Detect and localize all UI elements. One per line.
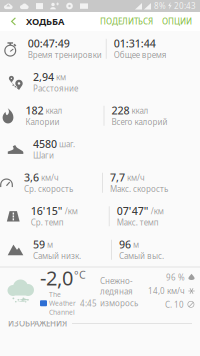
staticText: 16'15" [31, 204, 63, 218]
staticText: Калории [25, 116, 59, 127]
staticText: ОПЦИИ [162, 16, 192, 27]
staticText: 07'47" [117, 204, 149, 218]
staticText: 7,7 [110, 170, 125, 185]
staticText: изморось [100, 298, 138, 308]
staticText: 228 [111, 103, 129, 118]
staticText: 14,0 км/ч [148, 286, 185, 296]
staticText: Расстояние [33, 83, 78, 94]
staticText: Снежно-ледяная [100, 276, 133, 297]
staticText: шаг. [59, 139, 75, 149]
staticText: км/ч [127, 172, 145, 183]
staticText: 8% [154, 1, 166, 11]
staticText: 01:31:44 [114, 36, 156, 51]
staticText: м [47, 239, 53, 250]
staticText: 20:43 [174, 1, 196, 11]
staticText: -2,0 [40, 264, 73, 291]
staticText: °C [74, 267, 86, 282]
button[interactable]: ПОДЕЛИТЬСЯ [100, 12, 153, 31]
button[interactable]: Back [0, 12, 26, 31]
staticText: 4580 [33, 137, 57, 151]
staticText: Общее время [114, 49, 167, 60]
staticText: ХОДЬБА [26, 15, 64, 28]
staticText: /км [151, 206, 164, 216]
staticText: 59 [33, 237, 45, 252]
staticText: 2,94 [33, 70, 54, 84]
staticText: Ср. темп [31, 217, 64, 228]
button[interactable]: ОПЦИИ [162, 12, 192, 31]
staticText: The Weather Channel [49, 290, 76, 317]
staticText: 4:45 [80, 298, 97, 309]
staticText: м [133, 239, 139, 250]
staticText: 3,6 [24, 170, 39, 185]
staticText: Самый выс. [119, 250, 164, 261]
staticText: Время тренировки [28, 49, 102, 60]
staticText: Макс. скорость [110, 183, 168, 194]
staticText: 182 [25, 103, 43, 118]
staticText: Макс. темп [117, 217, 159, 228]
staticText: ккал [45, 105, 62, 116]
staticText: ккал [131, 105, 148, 116]
staticText: ПОДЕЛИТЬСЯ [100, 16, 153, 27]
staticText: 96 [119, 237, 131, 252]
staticText: км [56, 72, 66, 82]
staticText: 00:47:49 [28, 36, 70, 51]
staticText: 96 % [166, 272, 185, 283]
staticText: /км [65, 206, 78, 216]
staticText: км/ч [41, 172, 59, 183]
staticText: Самый низк. [33, 250, 81, 261]
staticText: Шаги [33, 150, 54, 161]
staticText: Всего калорий [111, 116, 167, 127]
staticText: С. 10 [165, 299, 184, 310]
staticText: ИЗОБРАЖЕНИЯ [8, 318, 67, 329]
staticText: Ср. скорость [24, 183, 73, 194]
